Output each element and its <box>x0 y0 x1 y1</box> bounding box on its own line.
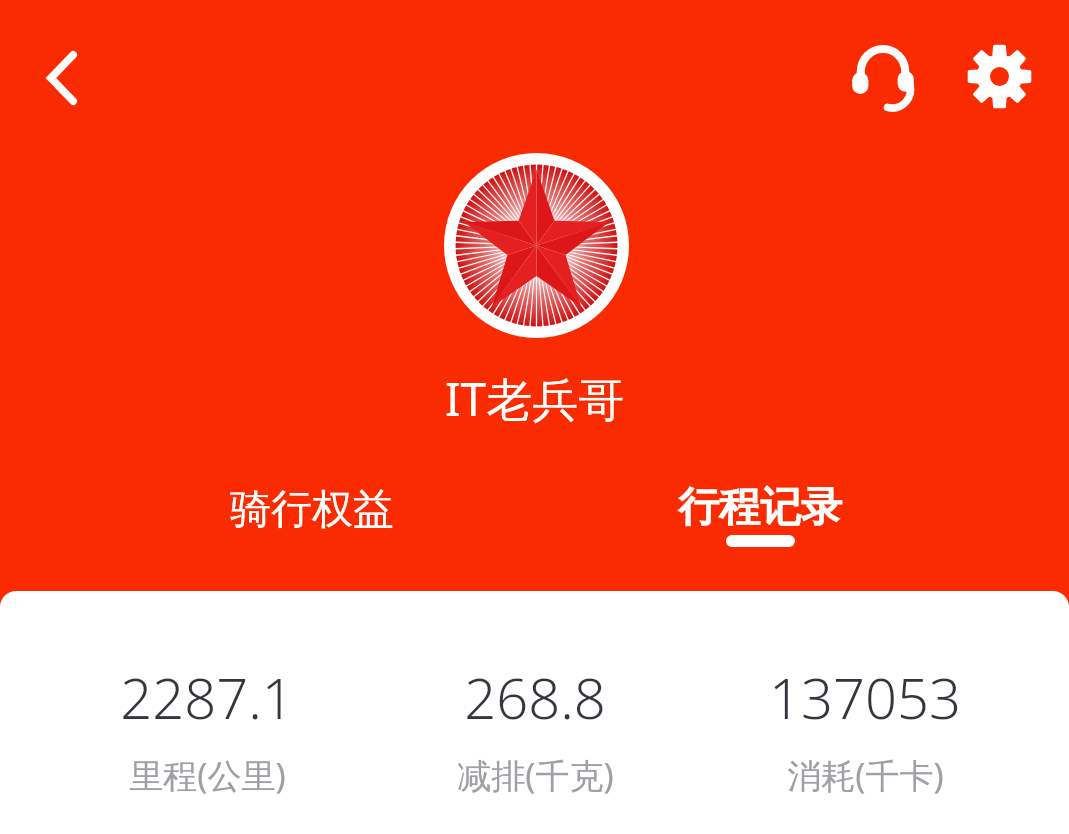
button[interactable]: 268.8 <box>404 659 666 798</box>
button[interactable]: 骑行权益 <box>180 477 444 543</box>
staticText: 268.8 <box>464 659 606 735</box>
button[interactable]: Back <box>20 36 104 120</box>
button[interactable]: 137053 <box>734 659 996 798</box>
staticText: 消耗(千卡) <box>787 752 944 798</box>
button[interactable]: 2287.1 <box>76 659 338 798</box>
staticText: 行程记录 <box>678 482 842 534</box>
staticText: IT老兵哥 <box>445 367 625 430</box>
staticText: 减排(千克) <box>457 752 614 798</box>
staticText: 里程(公里) <box>129 752 286 798</box>
staticText: 骑行权益 <box>230 484 394 536</box>
staticText: 137053 <box>769 659 961 735</box>
button[interactable]: Profile photo <box>444 153 629 338</box>
button[interactable]: 行程记录 <box>628 482 892 572</box>
staticText: 2287.1 <box>120 659 294 735</box>
button[interactable]: Settings <box>957 34 1041 118</box>
button[interactable]: Customer service <box>841 33 925 117</box>
